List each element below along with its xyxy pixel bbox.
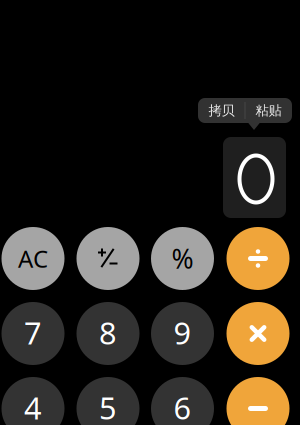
staticText: 8 [99,312,117,353]
staticText: 9 [173,312,191,353]
button[interactable]: Divide [226,227,289,290]
button[interactable]: AC [1,227,64,290]
staticText: 粘贴 [255,102,281,119]
button[interactable]: 4 [1,377,64,425]
button[interactable]: 5 [76,377,139,425]
button[interactable]: 6 [151,377,214,425]
button[interactable]: 8 [76,302,139,365]
staticText: 7 [24,312,42,353]
button[interactable]: 拷贝 [198,98,245,123]
button[interactable]: 7 [1,302,64,365]
staticText: 4 [24,387,42,425]
button[interactable]: Subtract [226,377,289,425]
button[interactable]: Multiply [226,302,289,365]
staticText: 拷贝 [208,102,234,119]
button[interactable]: 粘贴 [245,98,292,123]
button[interactable]: % [151,227,214,290]
staticText: AC [18,243,48,274]
staticText: 5 [99,387,117,425]
button[interactable]: 9 [151,302,214,365]
staticText: 6 [173,387,191,425]
button[interactable]: Toggle sign [76,227,139,290]
staticText: % [171,241,193,276]
